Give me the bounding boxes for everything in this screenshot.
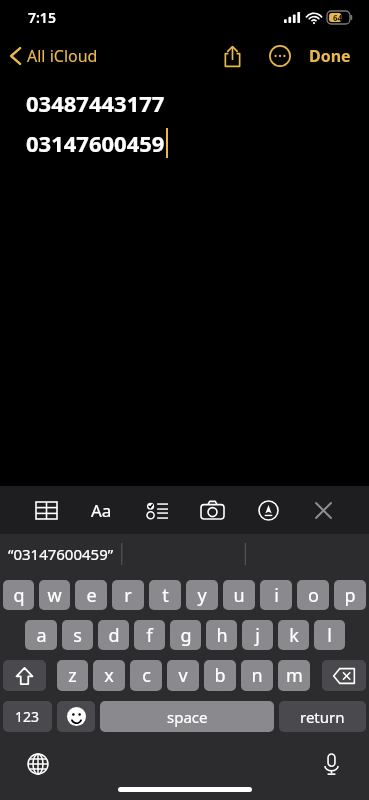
button[interactable]: v	[167, 660, 199, 691]
staticText: j	[255, 623, 260, 648]
staticText: k	[289, 623, 299, 648]
button[interactable]: Backspace	[322, 660, 366, 691]
staticText: w	[47, 583, 62, 608]
button[interactable]: Close	[301, 488, 345, 532]
button[interactable]: Emoji	[57, 701, 95, 732]
staticText: space	[167, 707, 208, 727]
staticText: h	[216, 623, 228, 648]
button[interactable]: 03487443177	[0, 78, 369, 486]
staticText: n	[251, 663, 263, 688]
button[interactable]: n	[241, 660, 273, 691]
button[interactable]: More options	[261, 37, 299, 75]
button[interactable]: Shift	[3, 660, 46, 691]
button[interactable]: z	[57, 660, 88, 691]
button[interactable]: k	[278, 620, 309, 650]
staticText: 03147600459	[26, 128, 165, 158]
staticText: a	[36, 623, 47, 648]
button[interactable]: Done	[305, 39, 355, 73]
button[interactable]: r	[112, 580, 144, 610]
button[interactable]: Checklist	[135, 488, 179, 532]
button[interactable]: w	[39, 580, 70, 610]
button[interactable]: i	[260, 580, 292, 610]
staticText: e	[86, 583, 97, 608]
staticText: o	[308, 583, 319, 608]
button[interactable]: return	[279, 701, 366, 732]
button[interactable]: s	[62, 620, 93, 650]
button[interactable]: q	[3, 580, 34, 610]
button[interactable]: Markup	[246, 488, 290, 532]
staticText: g	[180, 623, 192, 648]
button[interactable]: a	[25, 620, 57, 650]
button[interactable]: y	[186, 580, 218, 610]
staticText: v	[178, 663, 188, 688]
button[interactable]: Change keyboard language	[18, 744, 58, 784]
staticText: f	[146, 623, 153, 648]
staticText: q	[13, 583, 25, 608]
button[interactable]: u	[223, 580, 255, 610]
staticText: 7:15	[28, 8, 56, 27]
button[interactable]: c	[130, 660, 162, 691]
staticText: c	[142, 663, 151, 688]
staticText: l	[327, 623, 332, 648]
staticText: z	[68, 663, 77, 688]
staticText: i	[274, 583, 279, 608]
staticText: All iCloud	[27, 45, 98, 67]
staticText: b	[214, 663, 226, 688]
staticText: 64	[333, 12, 343, 23]
button[interactable]: p	[334, 580, 366, 610]
staticText: Done	[309, 45, 351, 67]
staticText: r	[124, 583, 132, 608]
button[interactable]: x	[93, 660, 125, 691]
button[interactable]: e	[75, 580, 107, 610]
button[interactable]: Dictation	[311, 744, 351, 784]
button[interactable]: m	[278, 660, 310, 691]
staticText: m	[286, 663, 303, 688]
button[interactable]: o	[297, 580, 329, 610]
staticText: y	[197, 583, 207, 608]
button[interactable]: h	[206, 620, 237, 650]
button[interactable]: t	[149, 580, 181, 610]
staticText: p	[344, 583, 356, 608]
staticText: u	[233, 583, 245, 608]
button[interactable]: All iCloud	[0, 39, 108, 73]
staticText: 03487443177	[26, 88, 165, 118]
staticText: s	[73, 623, 82, 648]
staticText: return	[300, 707, 345, 727]
button[interactable]: Share	[213, 37, 251, 75]
button[interactable]: j	[242, 620, 273, 650]
button[interactable]: b	[204, 660, 236, 691]
button[interactable]: l	[314, 620, 345, 650]
staticText: x	[104, 663, 114, 688]
button[interactable]: f	[134, 620, 165, 650]
button[interactable]: d	[98, 620, 129, 650]
staticText: t	[162, 583, 169, 608]
button[interactable]: Insert table	[24, 488, 68, 532]
button[interactable]: “03147600459”	[0, 540, 122, 568]
staticText: 123	[15, 707, 40, 726]
staticText: Aa	[91, 499, 112, 522]
button[interactable]: Text format	[79, 488, 123, 532]
button[interactable]: Camera	[190, 488, 234, 532]
button[interactable]: space	[100, 701, 274, 732]
button[interactable]: g	[170, 620, 201, 650]
staticText: d	[108, 623, 120, 648]
button[interactable]: 123	[3, 701, 52, 732]
